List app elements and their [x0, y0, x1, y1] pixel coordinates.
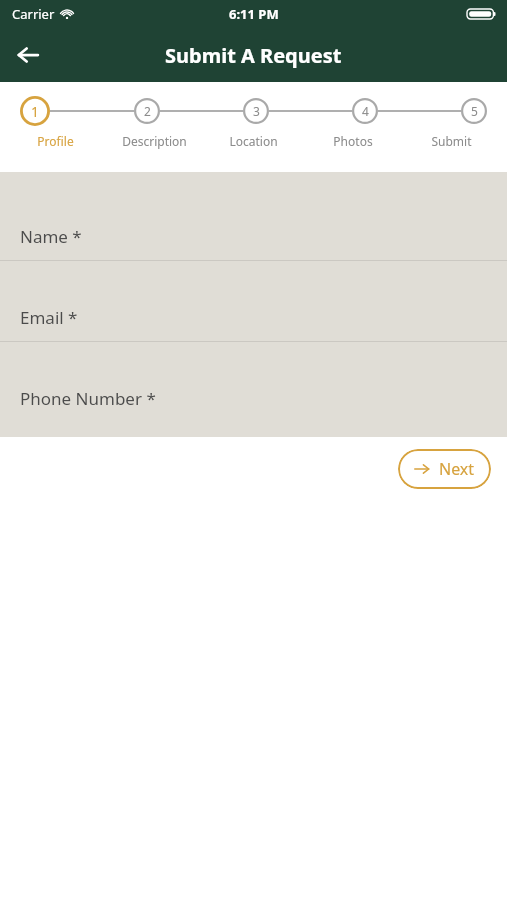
- staticText: Profile: [37, 133, 74, 149]
- button[interactable]: Phone Number *: [0, 342, 507, 422]
- staticText: Photos: [333, 133, 373, 149]
- staticText: 5: [471, 103, 478, 119]
- button[interactable]: 4: [352, 98, 378, 124]
- staticText: Phone Number *: [20, 387, 156, 410]
- staticText: Email *: [20, 306, 78, 329]
- staticText: 4: [362, 103, 369, 119]
- staticText: 6:11 PM: [229, 5, 279, 23]
- staticText: 1: [31, 102, 40, 121]
- staticText: Name *: [20, 225, 82, 248]
- staticText: Next: [439, 458, 475, 480]
- button[interactable]: 1: [20, 96, 50, 126]
- staticText: Carrier: [12, 5, 55, 23]
- staticText: 2: [144, 103, 151, 119]
- button[interactable]: Name *: [0, 172, 507, 260]
- button[interactable]: Email *: [0, 261, 507, 341]
- button[interactable]: Back: [6, 33, 50, 77]
- button[interactable]: 2: [134, 98, 160, 124]
- button[interactable]: Next: [398, 449, 491, 489]
- staticText: 3: [253, 103, 260, 119]
- staticText: Submit: [431, 133, 472, 149]
- staticText: Location: [229, 133, 278, 149]
- button[interactable]: 5: [461, 98, 487, 124]
- button[interactable]: 3: [243, 98, 269, 124]
- staticText: Submit A Request: [165, 42, 342, 69]
- staticText: Description: [122, 133, 187, 149]
